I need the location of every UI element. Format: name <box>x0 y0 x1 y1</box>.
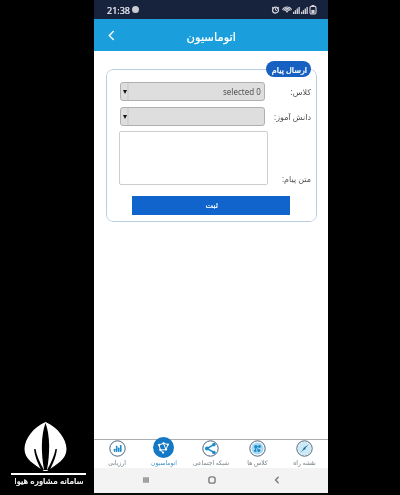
button[interactable]: شبکه اجتماعی <box>187 431 234 468</box>
staticText: شبکه اجتماعی <box>193 459 229 467</box>
button[interactable]: اتوماسیون <box>140 431 187 468</box>
staticText: ارزیابی <box>108 459 126 466</box>
button[interactable]: selected 0 <box>120 82 265 101</box>
staticText: selected 0 <box>223 86 261 97</box>
staticText: کلاس: <box>290 86 311 97</box>
staticText: اتوماسیون <box>151 459 177 466</box>
staticText: اتوماسیون <box>186 30 236 43</box>
button[interactable]: Back <box>271 474 283 486</box>
button[interactable]: کلاس ها <box>234 431 281 468</box>
staticText: کلاس ها <box>247 459 268 467</box>
button[interactable]: Recent apps <box>140 474 152 486</box>
button[interactable]: ارسال پیام <box>266 61 311 77</box>
button[interactable] <box>120 107 265 126</box>
staticText: دانش آموز: <box>274 111 311 122</box>
staticText: متن پیام: <box>281 173 311 184</box>
button[interactable]: Back <box>101 25 121 45</box>
staticText: ثبت <box>205 201 218 210</box>
button[interactable] <box>119 131 268 185</box>
button[interactable]: ارزیابی <box>94 431 140 468</box>
staticText: ارسال پیام <box>271 64 307 75</box>
button[interactable]: نقشه راه <box>281 431 328 468</box>
staticText: نقشه راه <box>293 459 316 467</box>
staticText: سامانه مشاوره هیوا <box>12 475 86 487</box>
button[interactable]: ثبت <box>132 196 290 215</box>
staticText: 21:38 <box>107 4 131 16</box>
button[interactable]: Home <box>206 474 218 486</box>
